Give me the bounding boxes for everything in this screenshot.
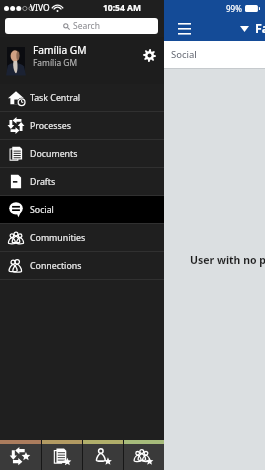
- staticText: Drafts: [30, 176, 56, 188]
- button[interactable]: Drafts: [0, 168, 164, 195]
- button[interactable]: Documents: [0, 140, 164, 167]
- button[interactable]: Connections favourites: [82, 440, 123, 470]
- button[interactable]: Search: [5, 18, 158, 34]
- button[interactable]: Família GM: [0, 37, 164, 84]
- staticText: Família GM: [255, 20, 265, 37]
- staticText: Communities: [30, 232, 86, 244]
- button[interactable]: Communities: [0, 224, 164, 251]
- staticText: Processes: [30, 120, 71, 132]
- button[interactable]: Processes: [0, 112, 164, 139]
- staticText: Documents: [30, 148, 78, 160]
- staticText: Social: [171, 48, 197, 61]
- staticText: Família GM: [33, 57, 78, 68]
- button[interactable]: Processes favourites: [0, 440, 41, 470]
- staticText: 99%: [226, 3, 242, 14]
- button[interactable]: Documents favourites: [41, 440, 82, 470]
- staticText: Task Central: [30, 92, 81, 104]
- staticText: Família GM: [33, 43, 87, 57]
- button[interactable]: Família GM: [240, 20, 265, 37]
- staticText: Social: [30, 204, 54, 216]
- staticText: 10:54 AM: [103, 2, 141, 14]
- button[interactable]: Social: [0, 196, 164, 223]
- staticText: VIVO: [30, 2, 50, 14]
- button[interactable]: Communities favourites: [123, 440, 164, 470]
- button[interactable]: Task Central: [0, 84, 164, 111]
- button[interactable]: Open navigation menu: [172, 19, 196, 37]
- staticText: Search: [73, 20, 100, 32]
- staticText: User with no posts: [190, 253, 265, 267]
- button[interactable]: Settings: [137, 43, 161, 67]
- staticText: Connections: [30, 260, 82, 272]
- button[interactable]: Connections: [0, 252, 164, 279]
